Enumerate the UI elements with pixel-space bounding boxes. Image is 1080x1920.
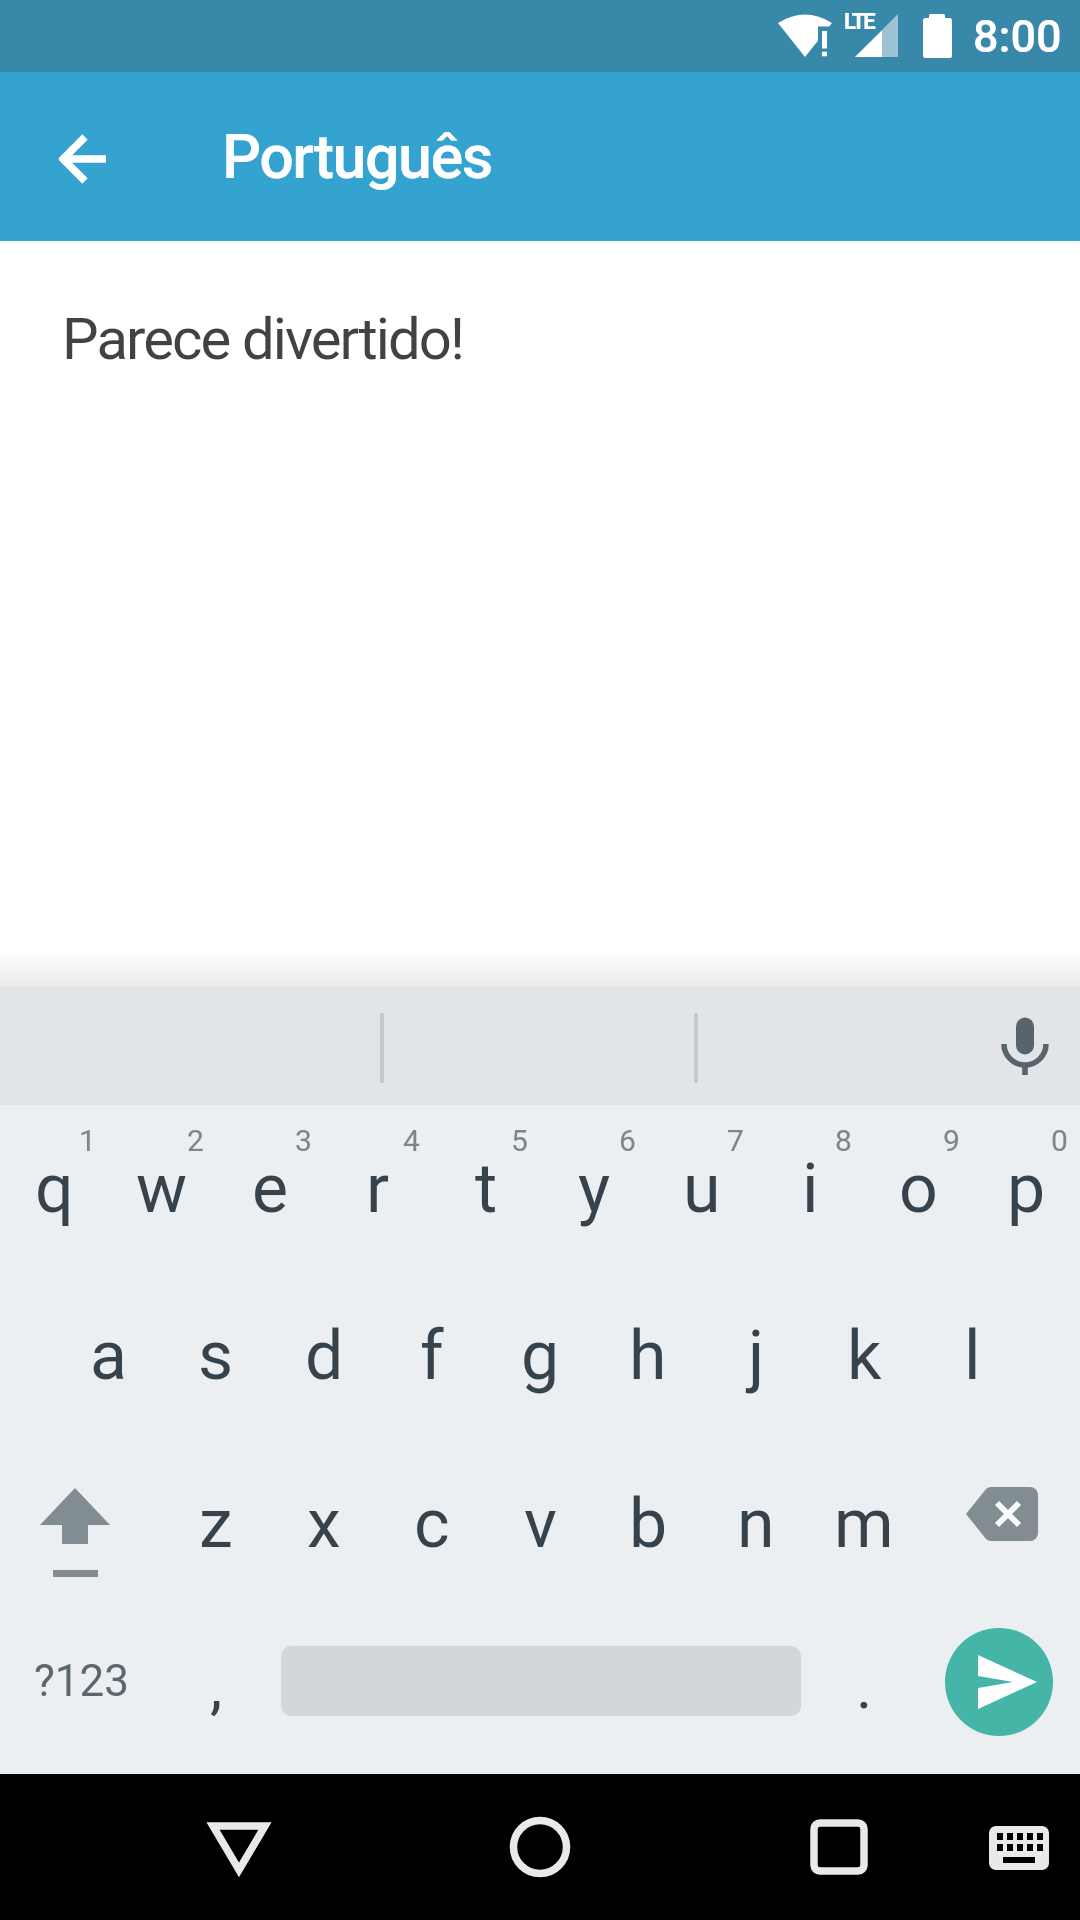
button[interactable]: .	[810, 1603, 918, 1770]
staticText: Português	[222, 121, 492, 192]
staticText: 2	[187, 1123, 204, 1158]
staticText: 4	[403, 1123, 420, 1158]
button[interactable]	[918, 1440, 1080, 1607]
staticText: y	[578, 1149, 611, 1229]
button[interactable]	[36, 111, 132, 207]
button[interactable]: k	[810, 1272, 918, 1440]
button[interactable]: l	[918, 1272, 1026, 1440]
button[interactable]: o	[864, 1105, 972, 1272]
staticText: x	[307, 1484, 341, 1564]
button[interactable]: x	[270, 1440, 378, 1607]
staticText: t	[475, 1149, 498, 1229]
staticText: w	[136, 1149, 188, 1229]
staticText: v	[524, 1484, 557, 1564]
button[interactable]: z	[162, 1440, 270, 1607]
staticText: j	[748, 1316, 765, 1396]
staticText: 7	[727, 1123, 744, 1158]
button[interactable]: t	[432, 1105, 540, 1272]
button[interactable]	[789, 1797, 889, 1897]
button[interactable]: ?123	[0, 1642, 162, 1720]
staticText: .	[856, 1650, 873, 1723]
button[interactable]: q	[0, 1105, 108, 1272]
staticText: i	[802, 1149, 819, 1229]
button[interactable]	[990, 997, 1080, 1097]
staticText: h	[629, 1316, 667, 1396]
staticText: g	[521, 1316, 560, 1396]
button[interactable]	[189, 1796, 289, 1896]
staticText: 1	[79, 1123, 96, 1158]
staticText: b	[629, 1484, 668, 1564]
staticText: c	[414, 1484, 450, 1564]
button[interactable]: y	[540, 1105, 648, 1272]
button[interactable]: g	[486, 1272, 594, 1440]
button[interactable]	[945, 1628, 1053, 1736]
staticText: m	[834, 1484, 894, 1564]
button[interactable]: n	[702, 1440, 810, 1607]
button[interactable]	[490, 1797, 590, 1897]
staticText: e	[252, 1149, 289, 1229]
button[interactable]: b	[594, 1440, 702, 1607]
staticText: 6	[619, 1123, 636, 1158]
button[interactable]: c	[378, 1440, 486, 1607]
staticText: ?123	[34, 1655, 129, 1707]
button[interactable]: d	[270, 1272, 378, 1440]
staticText: p	[1007, 1149, 1046, 1229]
staticText: ,	[210, 1650, 223, 1723]
staticText: u	[683, 1149, 721, 1229]
button[interactable]: w	[108, 1105, 216, 1272]
button[interactable]: r	[324, 1105, 432, 1272]
staticText: 8	[835, 1123, 852, 1158]
button[interactable]: ,	[162, 1603, 270, 1770]
staticText: 5	[511, 1123, 528, 1158]
button[interactable]	[975, 1806, 1063, 1890]
staticText: 8:00	[973, 10, 1062, 63]
staticText: n	[737, 1484, 775, 1564]
staticText: d	[305, 1316, 344, 1396]
staticText: q	[35, 1149, 74, 1229]
staticText: a	[90, 1316, 127, 1396]
button[interactable]: i	[756, 1105, 864, 1272]
staticText: LTE	[844, 9, 874, 35]
button[interactable]: e	[216, 1105, 324, 1272]
staticText: 9	[943, 1123, 960, 1158]
staticText: Parece divertido!	[62, 305, 464, 373]
staticText: z	[199, 1484, 233, 1564]
staticText: f	[420, 1316, 444, 1396]
button[interactable]: v	[486, 1440, 594, 1607]
button[interactable]: p	[972, 1105, 1080, 1272]
button[interactable]: j	[702, 1272, 810, 1440]
staticText: k	[847, 1316, 882, 1396]
staticText: o	[899, 1149, 938, 1229]
button[interactable]: a	[54, 1272, 162, 1440]
button[interactable]: u	[648, 1105, 756, 1272]
staticText: 0	[1051, 1123, 1068, 1158]
staticText: l	[964, 1316, 981, 1396]
staticText: r	[366, 1149, 390, 1229]
staticText: s	[198, 1316, 234, 1396]
button[interactable]	[0, 1440, 162, 1607]
button[interactable]: s	[162, 1272, 270, 1440]
button[interactable]: m	[810, 1440, 918, 1607]
button[interactable]: f	[378, 1272, 486, 1440]
staticText: 3	[295, 1123, 312, 1158]
button[interactable]: h	[594, 1272, 702, 1440]
